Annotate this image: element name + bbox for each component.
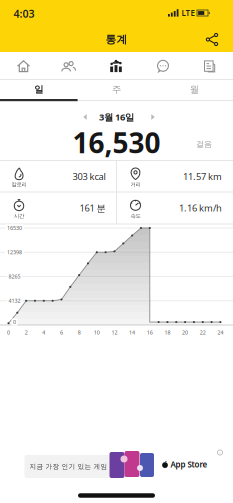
staticText: 주 (112, 84, 121, 95)
staticText: 월 (190, 84, 199, 95)
staticText: 0 (7, 329, 10, 336)
staticText: 3월 16일 (99, 111, 134, 123)
staticText: 12398 (7, 249, 22, 256)
staticText: 칼로리 (11, 181, 26, 188)
staticText: 0 (13, 318, 16, 326)
staticText: 20 (182, 329, 188, 336)
staticText: 11.57 km (183, 170, 222, 183)
staticText: 16530 (7, 224, 22, 232)
button[interactable]: 친구 (46, 53, 90, 79)
staticText: 거리 (130, 181, 140, 188)
staticText: 8 (78, 329, 81, 336)
staticText: 지금 가장 인기 있는 게임 (29, 462, 107, 471)
staticText: 16 (147, 329, 153, 336)
button[interactable]: 다음 날짜 (146, 110, 160, 124)
button[interactable]: 뉴스 (187, 53, 231, 79)
staticText: 22 (200, 329, 206, 336)
staticText: LTE (181, 8, 194, 18)
staticText: 161 분 (79, 202, 105, 214)
button[interactable]: 일 (0, 79, 78, 99)
staticText: 걸음 (196, 139, 212, 149)
button[interactable]: 채팅 (141, 53, 185, 79)
staticText: 속도 (130, 213, 140, 219)
staticText: 4132 (8, 297, 20, 304)
staticText: 1.16 km/h (179, 202, 222, 214)
staticText: 16,530 (72, 124, 160, 161)
staticText: 4:03 (13, 6, 34, 21)
staticText: 통계 (105, 33, 127, 46)
button[interactable]: 광고: 지금 가장 인기 있는 게임 — App Store (0, 448, 233, 482)
staticText: 18 (164, 329, 170, 336)
button[interactable]: 월 (155, 79, 233, 99)
button[interactable]: 통계 (94, 53, 138, 79)
button[interactable]: 이전 날짜 (78, 110, 92, 124)
button[interactable]: 주 (78, 79, 155, 99)
staticText: 4 (42, 329, 45, 336)
staticText: 303 kcal (72, 170, 105, 183)
staticText: 14 (129, 329, 135, 336)
staticText: 일 (34, 84, 43, 95)
staticText: App Store (170, 459, 207, 470)
staticText: 시간 (14, 213, 24, 219)
staticText: 24 (217, 329, 223, 336)
staticText: 10 (94, 329, 100, 336)
staticText: 6 (60, 329, 63, 336)
staticText: 2 (25, 329, 28, 336)
staticText: 8265 (8, 273, 20, 280)
staticText: 12 (111, 329, 117, 336)
button[interactable]: 홈 (1, 53, 45, 79)
button[interactable]: 공유 (200, 27, 224, 51)
